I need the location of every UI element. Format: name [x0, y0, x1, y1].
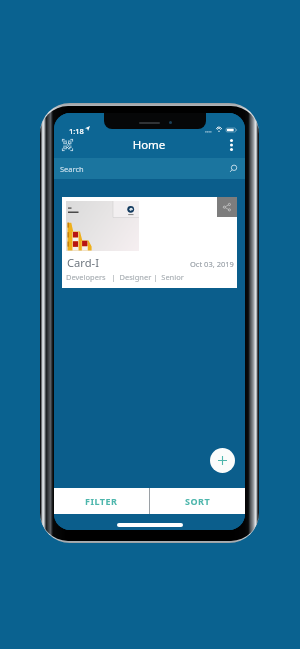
- button[interactable]: Share: [62, 197, 237, 288]
- staticText: Card-I: [67, 255, 100, 270]
- staticText: Oct 03, 2019: [190, 259, 234, 269]
- staticText: Home: [76, 137, 222, 153]
- button[interactable]: FILTER: [54, 488, 149, 514]
- button[interactable]: Share: [217, 197, 237, 217]
- button[interactable]: Search: [54, 158, 245, 179]
- button[interactable]: Add: [210, 448, 235, 473]
- staticText: SORT: [185, 495, 211, 507]
- staticText: 1:18: [69, 126, 84, 136]
- staticText: FILTER: [85, 495, 118, 507]
- button[interactable]: More options: [222, 136, 240, 154]
- staticText: Search: [60, 164, 229, 174]
- staticText: Developers | Designer | Senior: [66, 272, 184, 282]
- button[interactable]: SORT: [150, 488, 245, 514]
- button[interactable]: Scan QR code: [58, 136, 76, 154]
